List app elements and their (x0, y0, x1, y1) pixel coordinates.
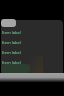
staticText: Item label (2, 40, 21, 45)
staticText: Item label (2, 60, 21, 65)
button[interactable]: Header (1, 19, 16, 27)
staticText: Item label (2, 50, 21, 55)
staticText: Item label (2, 30, 21, 35)
